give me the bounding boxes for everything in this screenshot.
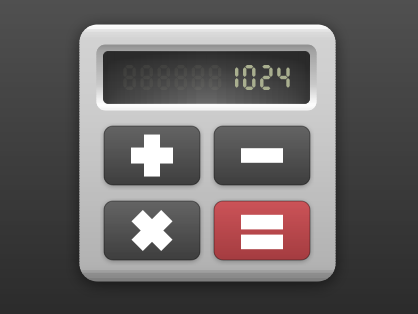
button[interactable] [104,201,200,260]
button[interactable] [104,126,200,185]
button[interactable] [214,201,310,260]
button[interactable] [214,126,310,185]
